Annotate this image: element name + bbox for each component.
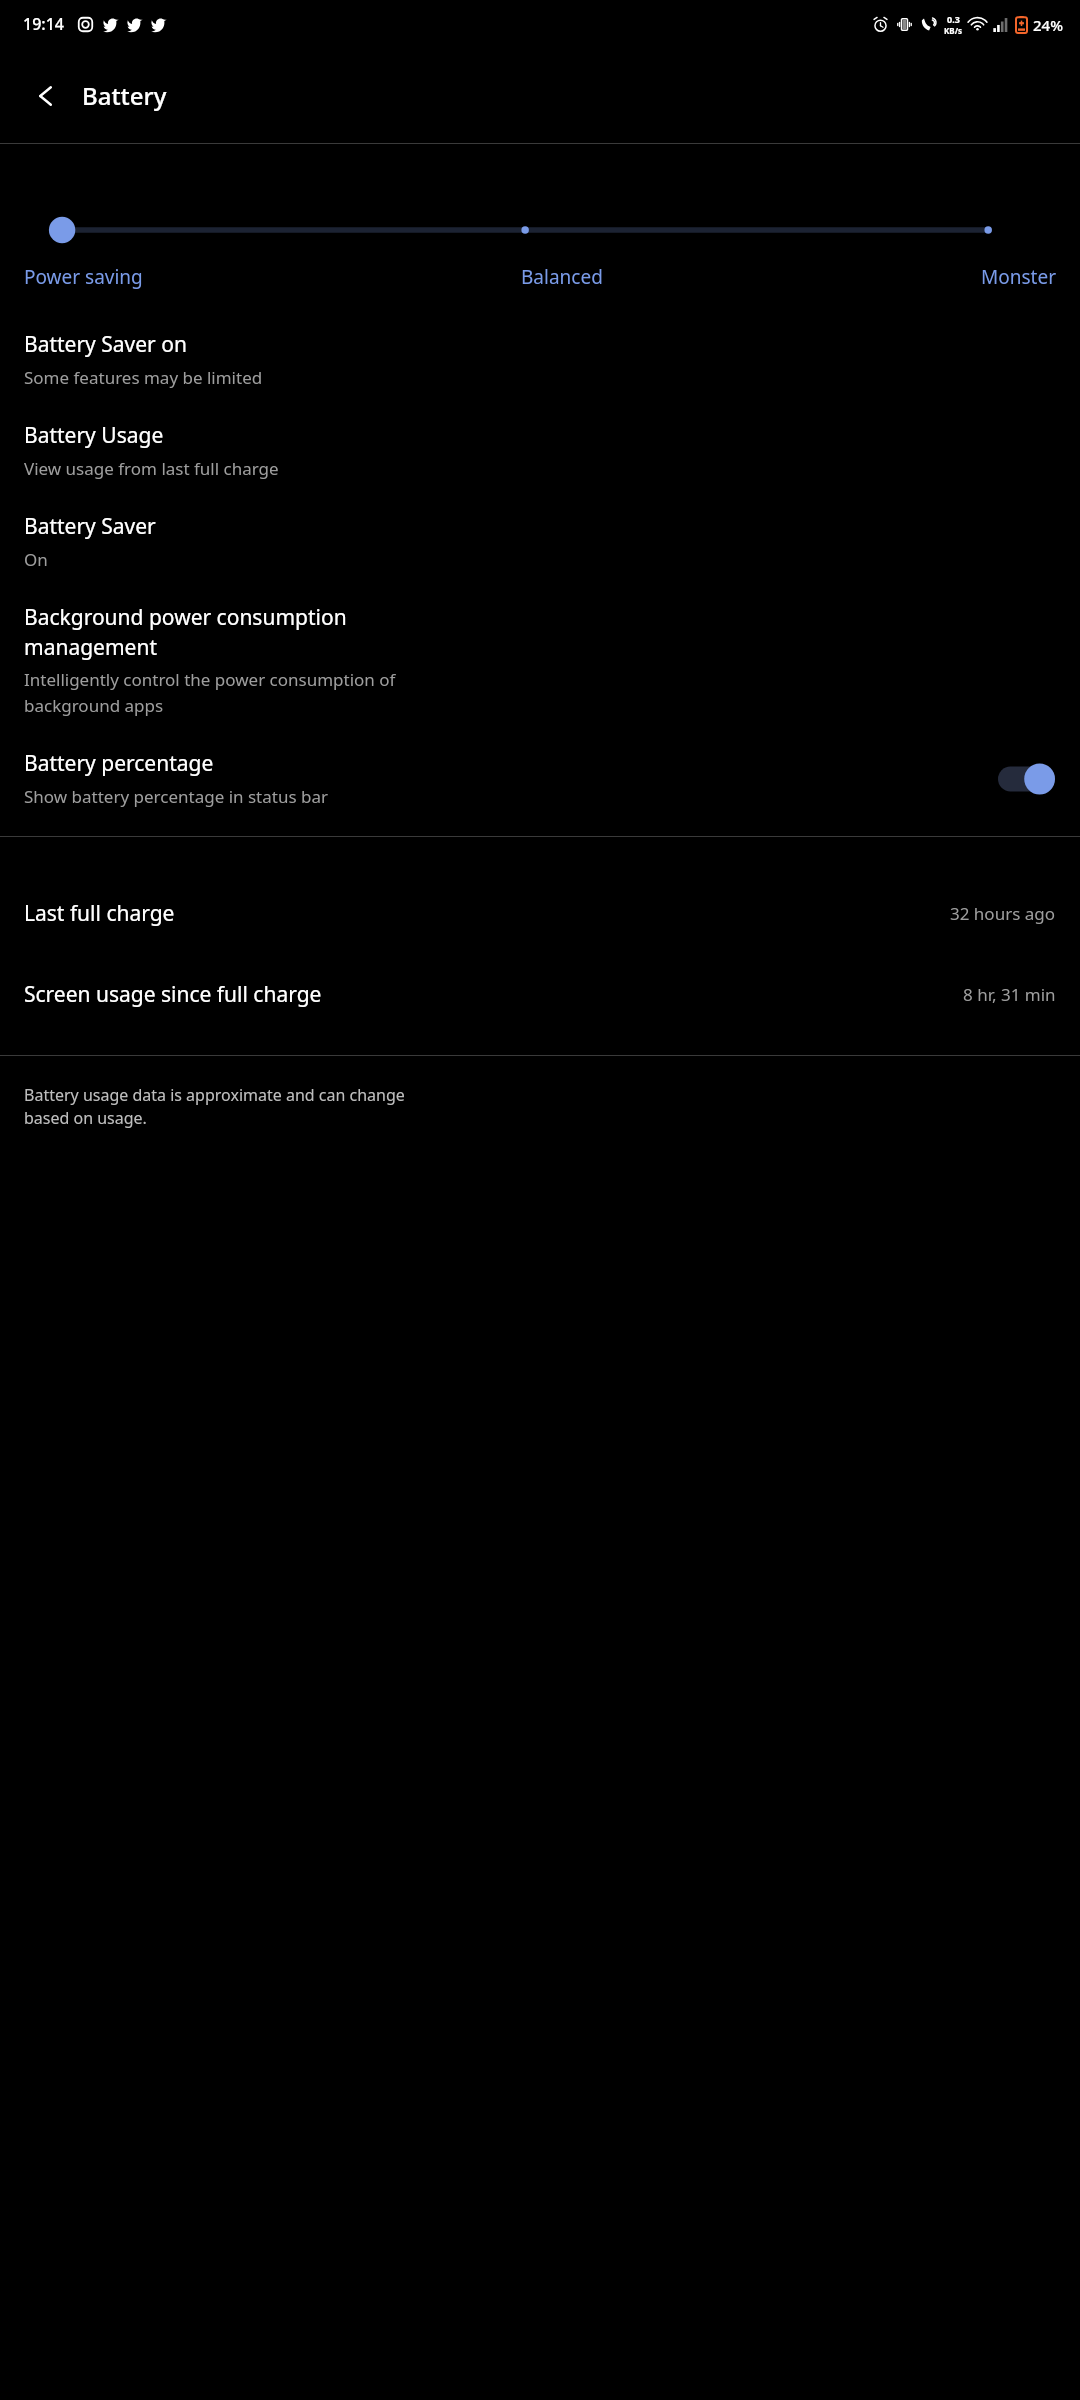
staticText: 24% xyxy=(1033,15,1063,35)
staticText: Background power consumption management xyxy=(24,603,347,661)
staticText: 8 hr, 31 min xyxy=(963,983,1056,1006)
button[interactable]: Battery percentage xyxy=(0,733,1080,824)
staticText: Power saving xyxy=(24,264,143,290)
staticText: Battery usage data is approximate and ca… xyxy=(24,1084,405,1129)
staticText: 0.3 xyxy=(947,13,960,25)
staticText: Show battery percentage in status bar xyxy=(24,785,328,808)
button[interactable]: Last full charge xyxy=(0,837,1080,928)
staticText: View usage from last full charge xyxy=(24,457,279,480)
staticText: Screen usage since full charge xyxy=(24,980,963,1009)
button[interactable]: Battery Usage xyxy=(0,405,1080,496)
staticText: Balanced xyxy=(521,264,603,290)
staticText: Monster xyxy=(981,264,1056,290)
staticText: Battery percentage xyxy=(24,749,214,778)
staticText: Battery xyxy=(82,79,167,112)
staticText: Battery Saver xyxy=(24,512,156,541)
button[interactable]: Battery Saver on xyxy=(0,314,1080,405)
staticText: On xyxy=(24,548,48,571)
button[interactable]: Screen usage since full charge xyxy=(0,928,1080,1009)
staticText: 19:14 xyxy=(23,13,64,35)
button[interactable]: Power mode slider xyxy=(0,208,1080,252)
staticText: KB/s xyxy=(944,25,962,36)
staticText: Battery Saver on xyxy=(24,330,187,359)
staticText: Battery Usage xyxy=(24,421,164,450)
staticText: Some features may be limited xyxy=(24,366,263,389)
button[interactable]: Background power consumption management xyxy=(0,587,1080,733)
staticText: 32 hours ago xyxy=(950,902,1056,925)
button[interactable]: Battery Saver xyxy=(0,496,1080,587)
staticText: Last full charge xyxy=(24,899,950,928)
button[interactable]: Back xyxy=(14,64,78,128)
staticText: Intelligently control the power consumpt… xyxy=(24,668,396,717)
